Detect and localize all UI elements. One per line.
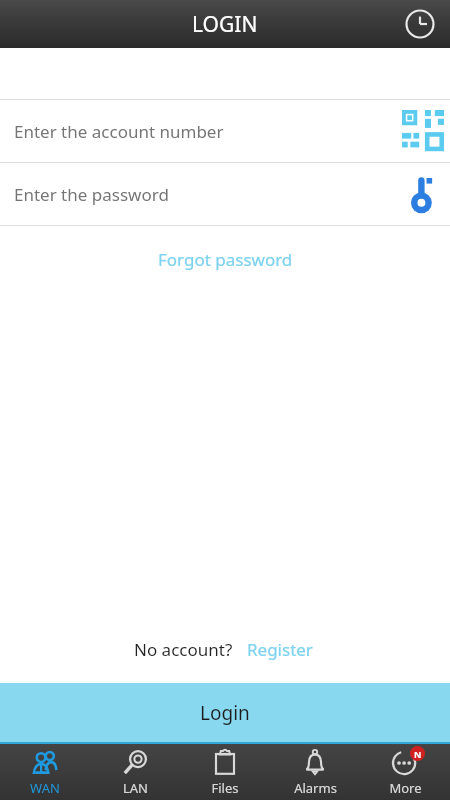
button[interactable]: Show password bbox=[400, 171, 446, 217]
staticText: Register bbox=[247, 638, 313, 661]
button[interactable]: N bbox=[360, 744, 450, 800]
staticText: More bbox=[389, 779, 422, 797]
button[interactable]: Forgot password bbox=[144, 240, 307, 279]
button[interactable]: History bbox=[398, 2, 442, 46]
button[interactable]: Alarms bbox=[270, 744, 360, 800]
staticText: Enter the account number bbox=[14, 120, 400, 143]
button[interactable]: Register bbox=[243, 632, 317, 667]
staticText: Alarms bbox=[294, 779, 337, 797]
staticText: No account? bbox=[134, 638, 233, 661]
button[interactable]: Enter the account number bbox=[0, 100, 450, 162]
button[interactable]: Login bbox=[0, 683, 450, 742]
staticText: LAN bbox=[123, 779, 148, 797]
staticText: Files bbox=[211, 779, 239, 797]
staticText: Enter the password bbox=[14, 183, 400, 206]
staticText: Forgot password bbox=[158, 248, 293, 271]
button[interactable]: WAN bbox=[0, 744, 90, 800]
button[interactable]: Files bbox=[180, 744, 270, 800]
button[interactable]: LAN bbox=[90, 744, 180, 800]
button[interactable]: Enter the password bbox=[0, 163, 450, 225]
staticText: Login bbox=[200, 700, 250, 726]
button[interactable]: Scan QR code bbox=[400, 108, 446, 154]
staticText: LOGIN bbox=[192, 10, 258, 39]
staticText: WAN bbox=[30, 779, 60, 797]
staticText: N bbox=[414, 748, 422, 760]
